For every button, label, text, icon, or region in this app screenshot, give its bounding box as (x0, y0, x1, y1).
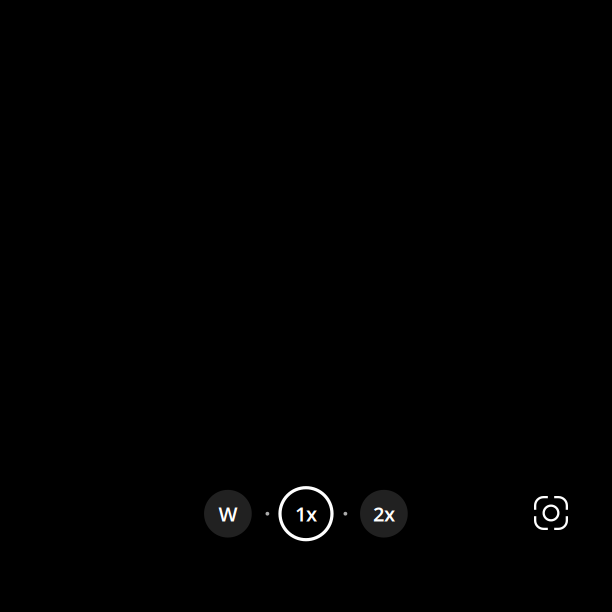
button[interactable]: W (204, 490, 252, 538)
staticText: 2x (373, 500, 395, 527)
staticText: W (218, 500, 237, 527)
button[interactable]: 2x (360, 490, 408, 538)
button[interactable]: Photographic Styles (534, 496, 568, 530)
staticText: 1x (295, 500, 317, 527)
button[interactable]: 1x (278, 486, 334, 541)
